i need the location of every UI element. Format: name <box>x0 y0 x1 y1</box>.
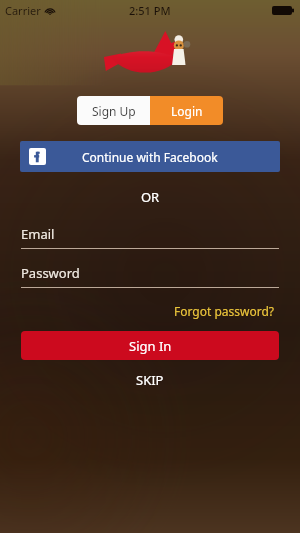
button[interactable]: Continue with Facebook <box>20 141 280 172</box>
staticText: Email <box>21 225 55 243</box>
staticText: Continue with Facebook <box>82 149 218 165</box>
staticText: OR <box>0 188 300 206</box>
staticText: Login <box>171 103 203 119</box>
staticText: Password <box>21 264 80 282</box>
button[interactable]: Sign Up <box>77 96 150 125</box>
button[interactable]: SKIP <box>120 368 180 392</box>
staticText: Sign Up <box>92 103 136 119</box>
staticText: Carrier <box>5 3 41 18</box>
staticText: 2:51 PM <box>129 3 171 18</box>
staticText: Sign In <box>129 337 172 355</box>
staticText: Forgot password? <box>174 303 275 319</box>
button[interactable]: Login <box>150 96 223 125</box>
button[interactable]: Password <box>21 264 279 288</box>
button[interactable]: Sign In <box>21 331 279 360</box>
button[interactable]: Forgot password? <box>170 299 279 323</box>
staticText: SKIP <box>136 371 164 389</box>
button[interactable]: Email <box>21 225 279 249</box>
